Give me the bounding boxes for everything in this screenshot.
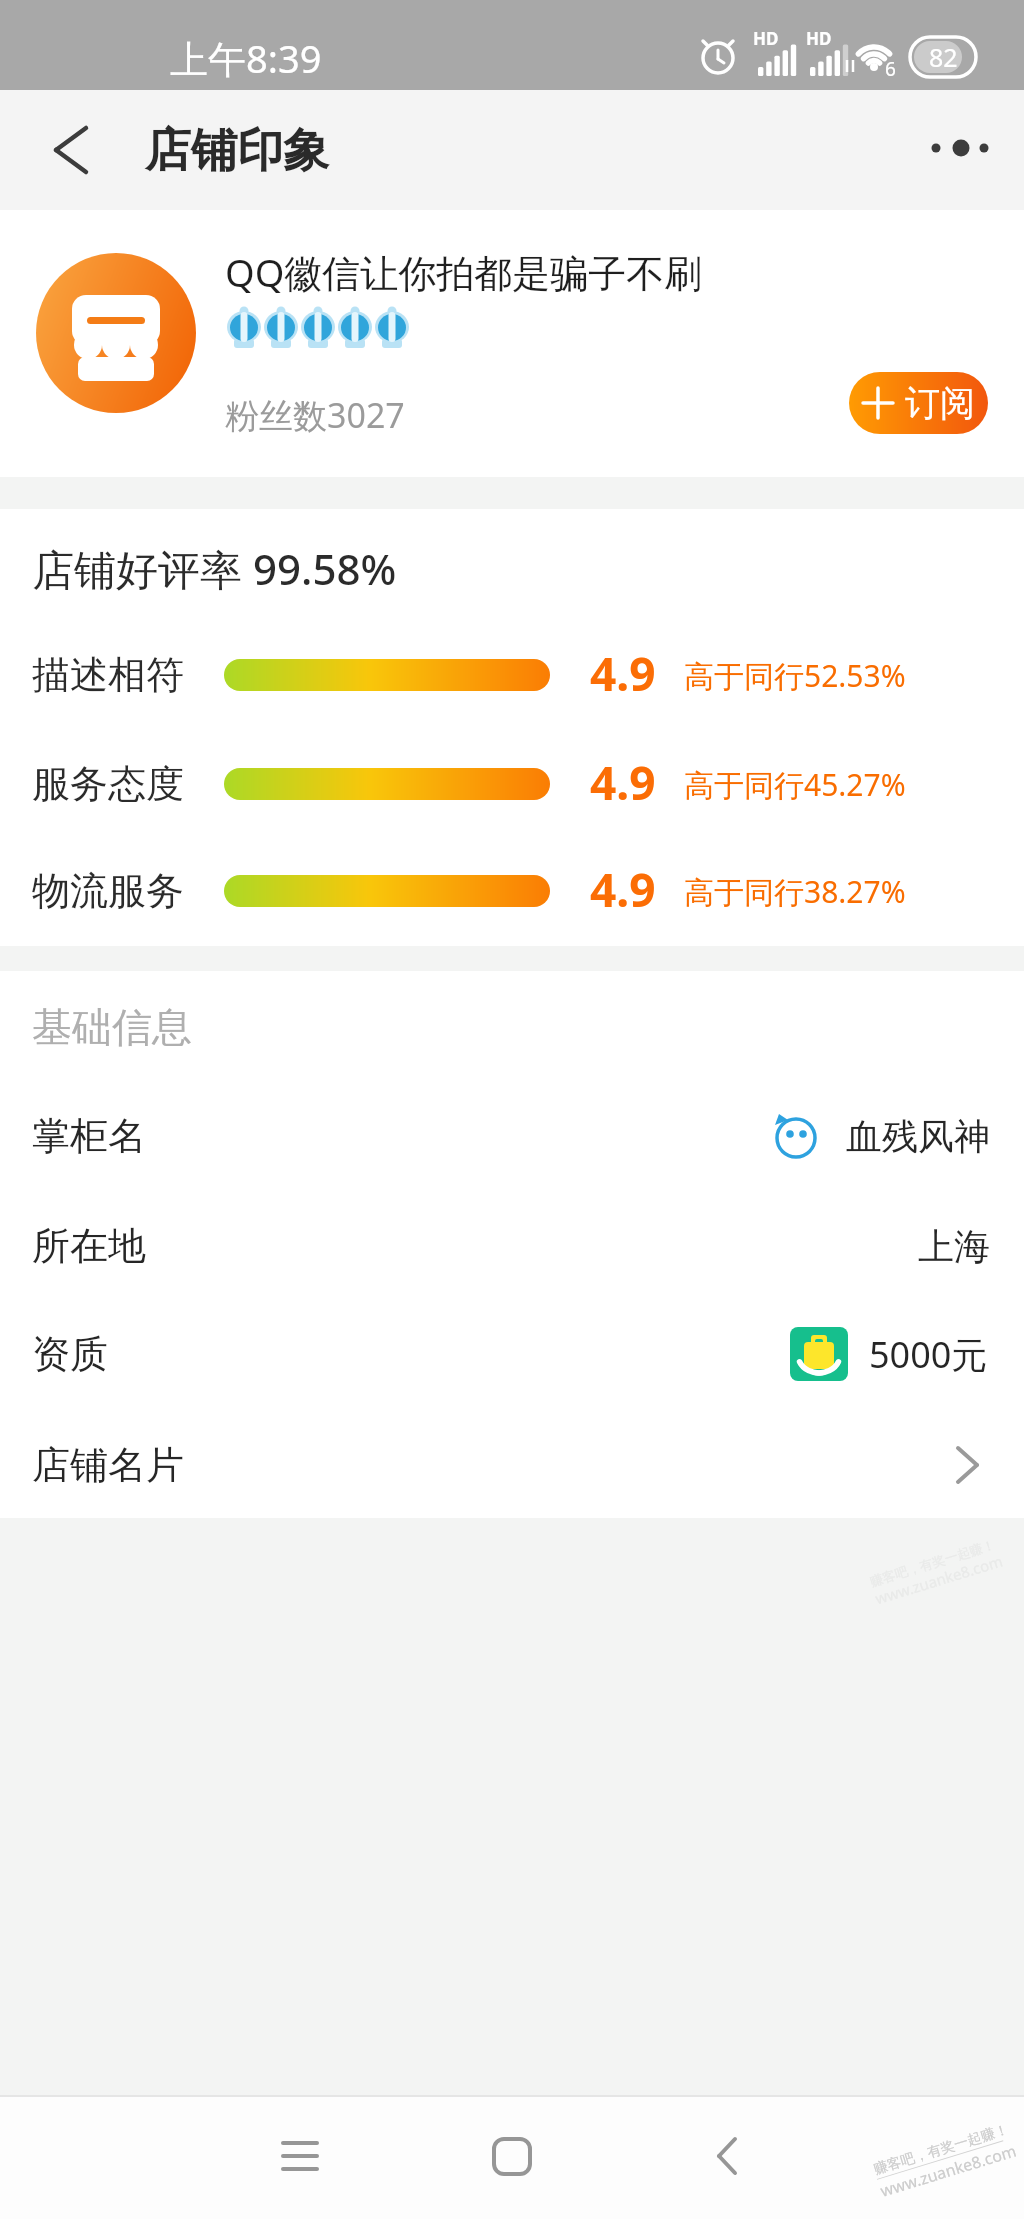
staticText: 4.9: [590, 751, 656, 814]
staticText: 粉丝数3027: [225, 392, 405, 438]
staticText: 上午8:39: [170, 32, 322, 84]
button[interactable]: [270, 2126, 330, 2186]
staticText: HD: [753, 27, 779, 50]
staticText: 高于同行38.27%: [684, 871, 906, 912]
staticText: 物流服务: [32, 867, 184, 915]
staticText: 6: [885, 56, 896, 82]
staticText: 描述相符: [32, 651, 184, 699]
staticText: 店铺名片: [32, 1441, 184, 1489]
staticText: HD: [806, 27, 832, 50]
staticText: 基础信息: [32, 1002, 192, 1052]
button[interactable]: 订阅: [849, 372, 988, 434]
staticText: 血残风神: [846, 1114, 990, 1159]
staticText: 掌柜名: [32, 1112, 146, 1160]
staticText: 所在地: [32, 1222, 146, 1270]
staticText: 4.9: [590, 858, 656, 921]
staticText: 店铺好评率 99.58%: [32, 540, 397, 597]
button[interactable]: [698, 2126, 758, 2186]
staticText: 5000元: [869, 1330, 988, 1379]
staticText: 赚客吧，有奖一起赚！: [872, 2121, 1011, 2179]
staticText: 高于同行45.27%: [684, 764, 906, 805]
staticText: QQ徽信让你拍都是骗子不刷: [225, 246, 703, 298]
staticText: 高于同行52.53%: [684, 655, 906, 696]
staticText: 订阅: [905, 381, 975, 425]
staticText: 82: [929, 40, 958, 74]
staticText: 4.9: [590, 642, 656, 705]
staticText: 店铺印象: [145, 122, 329, 180]
button[interactable]: [0, 1411, 1024, 1521]
button[interactable]: [915, 118, 1005, 178]
staticText: 资质: [32, 1330, 108, 1378]
staticText: 服务态度: [32, 760, 184, 808]
button[interactable]: [0, 1191, 1024, 1301]
button[interactable]: [0, 1301, 1024, 1411]
button[interactable]: [0, 1081, 1024, 1191]
button[interactable]: [40, 120, 104, 180]
button[interactable]: [482, 2126, 542, 2186]
staticText: 上海: [918, 1224, 990, 1269]
staticText: www.zuanke8.com: [877, 2140, 1019, 2202]
